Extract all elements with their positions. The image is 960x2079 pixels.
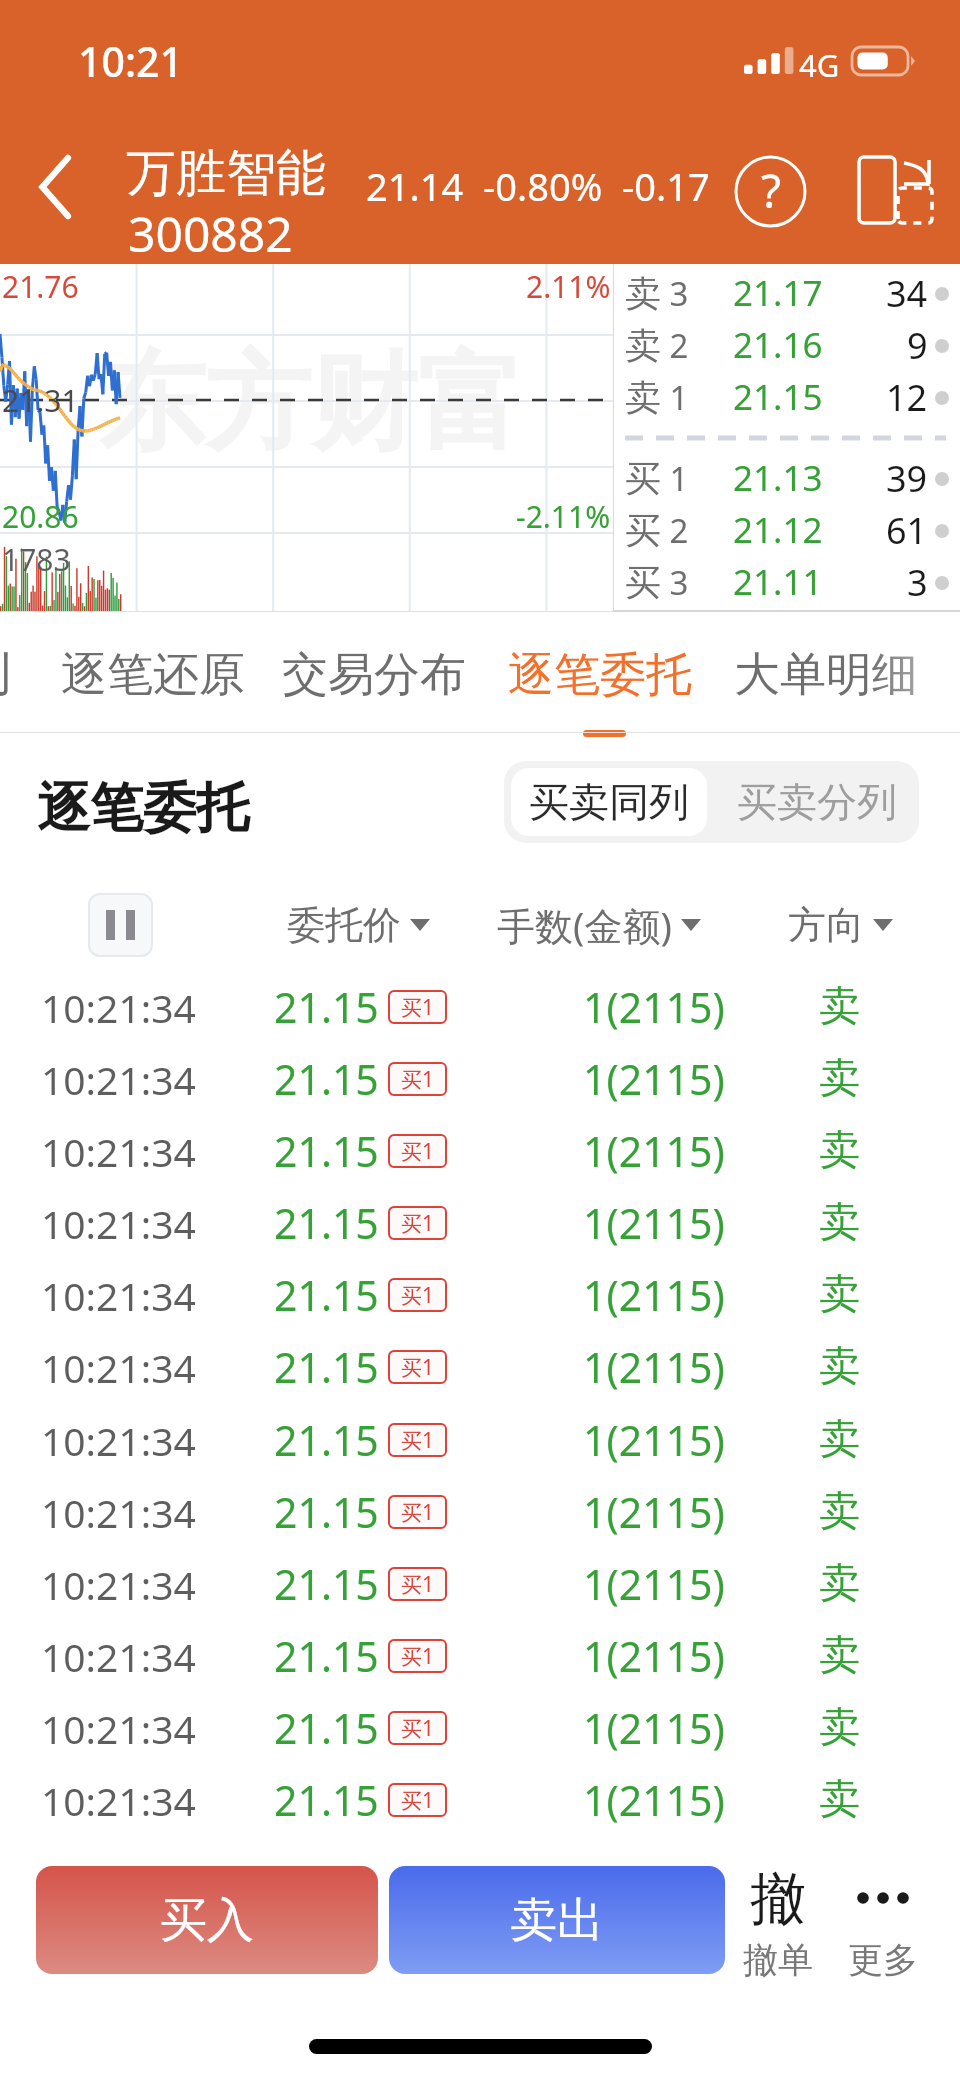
- staticText: 2.11%: [526, 266, 611, 307]
- staticText: 300882: [128, 201, 293, 266]
- staticText: 10:21:34: [41, 1486, 196, 1539]
- button[interactable]: 买: [614, 452, 960, 504]
- button[interactable]: 刂: [0, 646, 16, 704]
- staticText: 1(2115): [583, 1628, 725, 1684]
- staticText: 买1: [401, 1570, 435, 1599]
- button[interactable]: 卖: [614, 267, 960, 319]
- staticText: 21.15: [733, 373, 823, 421]
- staticText: 21.13: [733, 454, 823, 502]
- staticText: 21.11: [733, 558, 823, 606]
- staticText: 9: [907, 321, 928, 370]
- staticText: 10:21:34: [41, 1558, 196, 1611]
- staticText: 卖: [819, 1269, 860, 1321]
- staticText: 卖: [819, 1630, 860, 1682]
- staticText: 10:21:34: [41, 981, 196, 1034]
- staticText: 手数(金额): [497, 899, 672, 951]
- button[interactable]: 撤: [738, 1860, 818, 2004]
- button[interactable]: 10:21:34: [0, 1548, 960, 1620]
- staticText: 10:21:34: [41, 1269, 196, 1322]
- staticText: 1(2115): [583, 1556, 725, 1612]
- button[interactable]: 10:21:34: [0, 971, 960, 1043]
- staticText: 卖: [819, 1774, 860, 1826]
- staticText: 卖: [819, 981, 860, 1033]
- button[interactable]: 10:21:34: [0, 1043, 960, 1115]
- button[interactable]: 10:21:34: [0, 1764, 960, 1836]
- button[interactable]: 买卖分列: [714, 768, 919, 836]
- staticText: 买1: [401, 1642, 435, 1671]
- staticText: 21.15: [274, 1051, 379, 1107]
- staticText: 10:21:34: [41, 1774, 196, 1827]
- button[interactable]: 卖: [614, 371, 960, 423]
- button[interactable]: 方向: [710, 901, 960, 949]
- staticText: 卖: [819, 1341, 860, 1393]
- staticText: 更多: [848, 1938, 918, 1982]
- staticText: 21.15: [274, 1700, 379, 1756]
- staticText: 逐笔还原: [61, 646, 245, 704]
- button[interactable]: 委托价: [228, 901, 488, 949]
- staticText: 撤单: [743, 1938, 813, 1982]
- staticText: 1: [661, 375, 689, 420]
- button[interactable]: 10:21:34: [0, 1331, 960, 1403]
- staticText: 撤: [750, 1864, 806, 1935]
- staticText: 方向: [788, 901, 864, 949]
- staticText: ?: [761, 159, 781, 222]
- staticText: 34: [886, 269, 928, 318]
- staticText: 21.15: [274, 1267, 379, 1323]
- button[interactable]: 买: [614, 556, 960, 608]
- staticText: 买1: [401, 993, 435, 1022]
- staticText: 10:21:34: [41, 1702, 196, 1755]
- staticText: 10:21:34: [41, 1197, 196, 1250]
- staticText: 买卖分列: [737, 777, 897, 827]
- button[interactable]: 10:21:34: [0, 1476, 960, 1548]
- button[interactable]: 买入: [36, 1866, 378, 1974]
- button[interactable]: 卖: [614, 319, 960, 371]
- button[interactable]: 手数(金额): [469, 899, 729, 951]
- button[interactable]: 10:21:34: [0, 1259, 960, 1331]
- staticText: 61: [886, 506, 928, 555]
- staticText: 买: [625, 508, 661, 553]
- staticText: 1(2115): [583, 1123, 725, 1179]
- staticText: 4G: [799, 44, 840, 86]
- button[interactable]: 10:21:34: [0, 1620, 960, 1692]
- button[interactable]: Pause: [88, 893, 153, 957]
- staticText: 12: [886, 373, 928, 422]
- staticText: 卖: [819, 1125, 860, 1177]
- staticText: 卖: [625, 323, 661, 368]
- button[interactable]: 买卖同列: [511, 768, 707, 836]
- button[interactable]: Back: [0, 110, 112, 264]
- button[interactable]: More options: [843, 1860, 923, 2004]
- staticText: 21.15: [274, 1556, 379, 1612]
- staticText: 21.17: [733, 269, 823, 317]
- button[interactable]: 10:21:34: [0, 1404, 960, 1476]
- staticText: 21.12: [733, 506, 823, 554]
- staticText: 1(2115): [583, 1772, 725, 1828]
- staticText: 10:21:34: [41, 1125, 196, 1178]
- button[interactable]: 逐笔委托: [508, 646, 692, 704]
- staticText: 10:21: [78, 33, 183, 89]
- button[interactable]: 10:21:34: [0, 1187, 960, 1259]
- staticText: 1(2115): [583, 1267, 725, 1323]
- staticText: 1(2115): [583, 1195, 725, 1251]
- button[interactable]: 10:21:34: [0, 1115, 960, 1187]
- staticText: 39: [886, 454, 928, 503]
- staticText: -2.11%: [516, 496, 611, 537]
- button[interactable]: Help: [726, 147, 815, 236]
- button[interactable]: 卖出: [389, 1866, 725, 1974]
- staticText: 卖出: [510, 1891, 604, 1950]
- button[interactable]: 交易分布: [282, 646, 466, 704]
- button[interactable]: 买: [614, 504, 960, 556]
- staticText: 1: [661, 456, 689, 501]
- staticText: 卖: [819, 1197, 860, 1249]
- staticText: 21.15: [274, 1412, 379, 1468]
- staticText: 买1: [401, 1209, 435, 1238]
- button[interactable]: Rotate screen: [849, 147, 941, 227]
- staticText: -0.80%: [483, 160, 603, 212]
- staticText: 21.15: [274, 1772, 379, 1828]
- staticText: 卖: [819, 1414, 860, 1466]
- button[interactable]: 逐笔还原: [61, 646, 245, 704]
- staticText: 买1: [401, 1426, 435, 1455]
- staticText: 3: [661, 271, 689, 316]
- staticText: 21.31: [2, 380, 79, 421]
- button[interactable]: 大单明细: [734, 646, 918, 704]
- button[interactable]: 10:21:34: [0, 1692, 960, 1764]
